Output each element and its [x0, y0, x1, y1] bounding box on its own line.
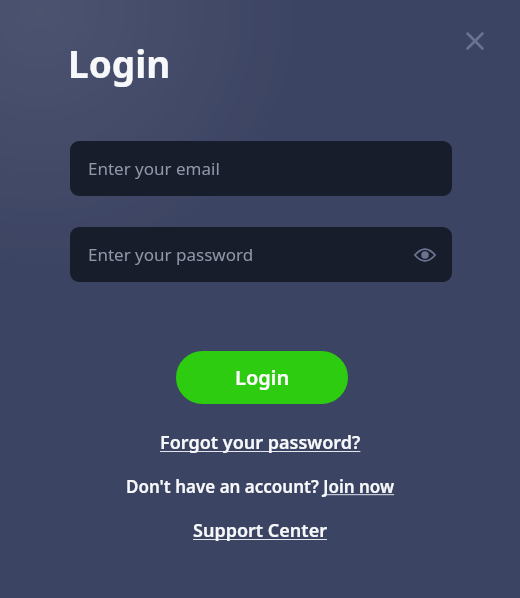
button[interactable]: Forgot your password?	[160, 430, 361, 455]
button[interactable]: Don't have an account? Join now	[126, 475, 395, 498]
button[interactable]: Login	[176, 351, 348, 404]
button[interactable]: Enter your password	[70, 227, 452, 282]
staticText: Support Center	[193, 518, 327, 543]
staticText: Don't have an account? Join now	[126, 475, 395, 498]
button[interactable]: Show password	[403, 233, 447, 277]
staticText: Login	[235, 364, 290, 391]
staticText: Enter your password	[88, 243, 254, 266]
button[interactable]: Support Center	[193, 518, 327, 543]
staticText: Enter your email	[88, 157, 220, 180]
button[interactable]: Close	[453, 19, 497, 63]
staticText: Login	[68, 38, 171, 88]
button[interactable]: Enter your email	[70, 141, 452, 196]
staticText: Forgot your password?	[160, 430, 361, 455]
